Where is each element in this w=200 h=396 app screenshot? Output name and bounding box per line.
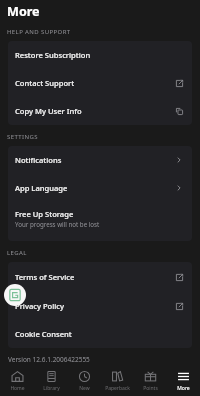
button[interactable]: Copy My User Info — [8, 97, 192, 125]
button[interactable]: Open link — [173, 300, 185, 312]
button[interactable]: New — [68, 367, 101, 396]
button[interactable]: Open — [173, 182, 185, 194]
staticText: Copy My User Info — [15, 106, 82, 116]
staticText: App Language — [15, 183, 68, 193]
staticText: Version 12.6.1.2006422555 — [8, 355, 90, 364]
staticText: Terms of Service — [15, 272, 75, 282]
button[interactable]: Open link — [173, 271, 185, 283]
button[interactable]: Open — [173, 154, 185, 166]
button[interactable]: Copy — [173, 105, 185, 117]
staticText: Points — [143, 385, 158, 392]
button[interactable]: Home — [0, 367, 34, 396]
staticText: Contact Support — [15, 78, 75, 88]
button[interactable]: Contact Support — [8, 69, 192, 97]
staticText: More — [177, 385, 190, 392]
staticText: Paperback — [105, 385, 130, 392]
staticText: Cookie Consent — [15, 329, 72, 339]
staticText: Notifications — [15, 155, 62, 165]
staticText: More — [7, 3, 40, 20]
staticText: Privacy Policy — [15, 301, 65, 311]
staticText: LEGAL — [7, 249, 27, 257]
button[interactable]: Paperback — [101, 367, 134, 396]
staticText: New — [79, 385, 90, 392]
staticText: HELP AND SUPPORT — [7, 28, 71, 36]
button[interactable]: Points — [134, 367, 167, 396]
staticText: SETTINGS — [7, 133, 38, 141]
button[interactable]: Free Up Storage — [8, 202, 192, 235]
button[interactable]: Privacy Policy — [8, 291, 192, 320]
button[interactable]: More — [167, 367, 200, 396]
button[interactable]: Notifications — [8, 146, 192, 174]
button[interactable]: App Language — [8, 174, 192, 202]
staticText: Home — [10, 385, 25, 392]
staticText: Your progress will not be lost — [15, 220, 100, 228]
button[interactable]: App badge — [4, 284, 26, 306]
button[interactable]: Open link — [173, 77, 185, 89]
button[interactable]: Library — [34, 367, 68, 396]
staticText: Library — [43, 385, 60, 392]
button[interactable]: Restore Subscription — [8, 41, 192, 69]
staticText: Free Up Storage — [15, 209, 74, 219]
button[interactable]: Cookie Consent — [8, 320, 192, 348]
staticText: Restore Subscription — [15, 50, 91, 60]
button[interactable]: Terms of Service — [8, 262, 192, 291]
